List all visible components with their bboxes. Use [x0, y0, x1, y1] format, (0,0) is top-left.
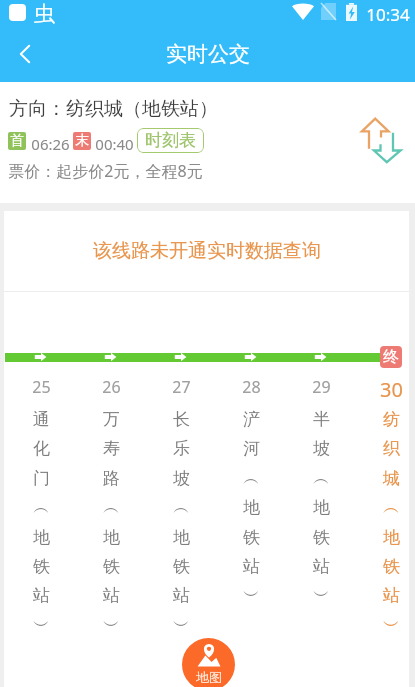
staticText: 浐 [243, 409, 260, 430]
staticText: 站 [243, 556, 260, 577]
staticText: 地 [383, 527, 400, 548]
staticText: 地 [103, 527, 120, 548]
staticText: 地 [243, 497, 260, 518]
staticText: 站 [103, 585, 120, 606]
staticText: 27 [172, 376, 191, 398]
staticText: 25 [32, 376, 51, 398]
staticText: 坡 [313, 438, 330, 459]
staticText: 乐 [173, 438, 190, 459]
button[interactable]: Switch direction [355, 114, 407, 166]
staticText: 化 [33, 438, 50, 459]
staticText: ︶ [243, 585, 260, 606]
staticText: ︶ [313, 585, 330, 606]
staticText: ︵ [173, 497, 190, 518]
staticText: 长 [173, 409, 190, 430]
staticText: 29 [312, 376, 331, 398]
staticText: 实时公交 [166, 41, 250, 67]
staticText: 30 [380, 376, 403, 398]
staticText: 站 [383, 585, 400, 606]
staticText: 终 [383, 347, 399, 367]
staticText: ︶ [103, 615, 120, 636]
staticText: 首 [10, 132, 24, 150]
staticText: 铁 [103, 556, 120, 577]
staticText: 地 [313, 497, 330, 518]
staticText: 站 [33, 585, 50, 606]
staticText: 26 [102, 376, 121, 398]
staticText: 方向：纺织城（地铁站） [9, 97, 218, 121]
staticText: 寿 [103, 438, 120, 459]
staticText: 织 [383, 438, 400, 459]
staticText: 河 [243, 438, 260, 459]
staticText: ︶ [33, 615, 50, 636]
staticText: 虫 [34, 1, 55, 27]
staticText: 铁 [383, 556, 400, 577]
staticText: 铁 [243, 527, 260, 548]
staticText: 铁 [33, 556, 50, 577]
staticText: 坡 [173, 468, 190, 489]
staticText: 地 [173, 527, 190, 548]
staticText: 站 [313, 556, 330, 577]
staticText: 06:26 [31, 134, 70, 154]
button[interactable]: 时刻表 [137, 128, 204, 153]
staticText: 票价：起步价2元，全程8元 [8, 160, 203, 182]
staticText: ︵ [313, 468, 330, 489]
staticText: 地 [33, 527, 50, 548]
staticText: ︶ [173, 615, 190, 636]
staticText: 站 [173, 585, 190, 606]
staticText: 末 [75, 132, 89, 150]
button[interactable]: Back [0, 26, 50, 82]
staticText: 00:40 [95, 134, 134, 154]
staticText: 该线路未开通实时数据查询 [93, 239, 321, 263]
staticText: ︵ [33, 497, 50, 518]
staticText: ︵ [103, 497, 120, 518]
staticText: 门 [33, 468, 50, 489]
staticText: ︵ [383, 497, 400, 518]
staticText: 纺 [383, 409, 400, 430]
staticText: 通 [33, 409, 50, 430]
staticText: 10:34 [366, 3, 410, 26]
staticText: 时刻表 [145, 130, 196, 151]
staticText: 铁 [173, 556, 190, 577]
staticText: ︵ [243, 468, 260, 489]
staticText: 地图 [196, 669, 222, 685]
staticText: ︶ [383, 615, 400, 636]
staticText: 万 [103, 409, 120, 430]
staticText: 半 [313, 409, 330, 430]
staticText: 28 [242, 376, 261, 398]
staticText: 路 [103, 468, 120, 489]
staticText: 城 [383, 468, 400, 489]
button[interactable]: 地图 [182, 638, 235, 687]
staticText: 铁 [313, 527, 330, 548]
